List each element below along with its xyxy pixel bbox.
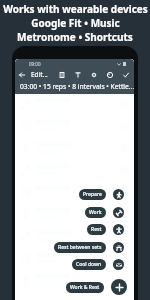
staticText: Metronome • Shortcuts (17, 30, 133, 44)
button[interactable]: Prepare (79, 189, 106, 200)
button[interactable]: Done (118, 68, 134, 81)
button[interactable]: Back (16, 69, 28, 81)
staticText: Rest between sets (58, 244, 102, 251)
button[interactable]: Rest between sets (54, 242, 106, 253)
button[interactable]: Edit... (31, 70, 48, 79)
staticText: 03:00 • 15 reps • 8 intervals • Kettle..… (20, 82, 134, 91)
button[interactable]: Cool down (72, 259, 106, 270)
staticText: Work (89, 209, 102, 216)
button[interactable]: Work (113, 207, 124, 218)
button[interactable]: Text (70, 68, 86, 81)
staticText: 09:00 (29, 61, 41, 67)
button[interactable]: Prepare (113, 189, 124, 200)
staticText: Works with wearable devices (3, 2, 148, 16)
button[interactable]: Rest (113, 224, 124, 235)
button[interactable]: Rest (87, 224, 106, 235)
button[interactable]: Duplicate (54, 68, 70, 81)
button[interactable]: Cool down (113, 259, 124, 270)
button[interactable]: Preview (86, 68, 102, 81)
staticText: Cool down (76, 261, 102, 268)
staticText: Prepare (83, 191, 102, 198)
staticText: Rest (91, 226, 102, 233)
button[interactable]: Work & Rest (66, 282, 104, 293)
button[interactable]: Theme (102, 68, 118, 81)
staticText: Google Fit • Music (31, 16, 120, 30)
button[interactable]: Add interval (111, 279, 127, 295)
button[interactable]: Rest between sets (113, 242, 124, 253)
button[interactable]: Work (85, 207, 106, 218)
staticText: Work & Rest (70, 284, 100, 291)
